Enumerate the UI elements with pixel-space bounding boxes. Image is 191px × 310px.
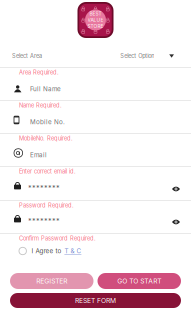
button[interactable]: REGISTER <box>10 273 93 289</box>
button[interactable]: ******** <box>0 178 191 200</box>
button[interactable]: RESET FORM <box>10 293 181 308</box>
button[interactable]: GO TO START <box>97 273 181 289</box>
staticText: GO TO START <box>117 277 161 285</box>
staticText: RESET FORM <box>75 296 116 305</box>
staticText: MobileNo. Required. <box>19 135 73 142</box>
staticText: STORE <box>87 23 103 29</box>
staticText: VALUE <box>87 17 103 23</box>
staticText: Password Required. <box>19 202 74 209</box>
button[interactable]: Full Name <box>0 78 191 100</box>
button[interactable]: Email <box>0 144 191 166</box>
button[interactable]: Mobile No. <box>0 111 191 133</box>
staticText: Email <box>30 151 47 159</box>
staticText: Mobile No. <box>30 118 65 126</box>
staticText: Select Area <box>12 53 42 59</box>
staticText: REGISTER <box>36 277 67 285</box>
staticText: Area Required. <box>19 69 59 76</box>
staticText: Full Name <box>30 85 61 93</box>
staticText: Enter correct email id. <box>19 168 76 175</box>
staticText: BEST <box>89 11 101 17</box>
staticText: Select Option <box>120 53 154 59</box>
button[interactable]: I Agree to <box>0 244 191 258</box>
button[interactable]: Select Option <box>120 53 174 59</box>
button[interactable]: ******** <box>0 211 191 233</box>
staticText: ******** <box>28 184 60 193</box>
staticText: ******** <box>28 217 60 226</box>
staticText: T & C <box>64 247 81 255</box>
staticText: Confirm Password Required. <box>19 235 96 242</box>
staticText: Name Required. <box>19 102 62 109</box>
staticText: I Agree to <box>31 247 61 255</box>
